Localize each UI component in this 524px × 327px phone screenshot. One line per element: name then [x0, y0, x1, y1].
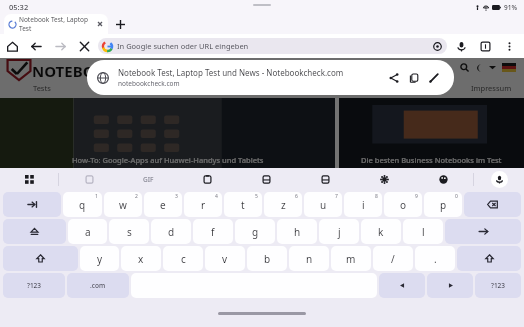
- button[interactable]: left: [379, 273, 425, 298]
- button[interactable]: o: [384, 192, 422, 217]
- button[interactable]: shift: [3, 246, 78, 271]
- staticText: y: [97, 252, 103, 266]
- staticText: t: [241, 198, 245, 212]
- staticText: d: [168, 225, 175, 239]
- button[interactable]: Text editing: [296, 168, 355, 191]
- button[interactable]: Voice search: [449, 34, 473, 58]
- staticText: r: [201, 198, 206, 212]
- button[interactable]: /: [373, 246, 413, 271]
- button[interactable]: Close tab: [97, 21, 103, 27]
- button[interactable]: enter: [445, 219, 521, 244]
- staticText: In Google suchen oder URL eingeben: [117, 41, 433, 51]
- staticText: ?123: [491, 281, 506, 290]
- button[interactable]: ?123: [475, 273, 521, 298]
- button[interactable]: Notebook Test, Laptop Test und News - No…: [87, 60, 454, 95]
- button[interactable]: c: [163, 246, 203, 271]
- button[interactable]: .: [415, 246, 455, 271]
- button[interactable]: l: [403, 219, 443, 244]
- button[interactable]: Edit: [424, 68, 444, 88]
- button[interactable]: Back: [24, 34, 48, 58]
- button[interactable]: Translate: [237, 168, 296, 191]
- button[interactable]: Tab switcher: [473, 34, 497, 58]
- button[interactable]: Lens: [433, 42, 442, 51]
- staticText: Notebook Test, Laptop Test: [19, 15, 95, 33]
- button[interactable]: m: [331, 246, 371, 271]
- button[interactable]: del: [464, 192, 521, 217]
- button[interactable]: w: [104, 192, 142, 217]
- staticText: notebookcheck.com: [118, 79, 180, 88]
- button[interactable]: In Google suchen oder URL eingeben: [98, 38, 447, 54]
- button[interactable]: Share: [384, 68, 404, 88]
- button[interactable]: f: [193, 219, 233, 244]
- button[interactable]: h: [277, 219, 317, 244]
- button[interactable]: n: [289, 246, 329, 271]
- button[interactable]: Copy: [404, 68, 424, 88]
- button[interactable]: Clipboard: [178, 168, 237, 191]
- button[interactable]: a: [68, 219, 107, 244]
- button[interactable]: Apps: [0, 168, 58, 191]
- staticText: i: [362, 198, 365, 212]
- staticText: c: [181, 252, 186, 266]
- button[interactable]: Voice input: [474, 168, 524, 191]
- button[interactable]: s: [109, 219, 149, 244]
- staticText: m: [346, 252, 356, 266]
- button[interactable]: Sticker: [59, 168, 119, 191]
- button[interactable]: d: [151, 219, 191, 244]
- staticText: q: [79, 198, 86, 212]
- button[interactable]: v: [205, 246, 245, 271]
- staticText: w: [119, 198, 127, 212]
- staticText: 5: [255, 193, 258, 200]
- button[interactable]: k: [361, 219, 401, 244]
- staticText: v: [222, 252, 228, 266]
- staticText: Die besten Business Notebooks im Test: [361, 155, 502, 165]
- staticText: a: [85, 225, 91, 239]
- button[interactable]: t: [224, 192, 262, 217]
- button[interactable]: b: [247, 246, 287, 271]
- staticText: .com: [90, 281, 106, 290]
- staticText: ?123: [27, 281, 42, 290]
- staticText: 1: [95, 193, 98, 200]
- button[interactable]: New tab: [112, 16, 128, 32]
- button[interactable]: x: [121, 246, 161, 271]
- button[interactable]: Theme: [414, 168, 473, 191]
- button[interactable]: Notebook Test, Laptop Test: [4, 14, 108, 34]
- button[interactable]: u: [304, 192, 342, 217]
- staticText: 4: [215, 193, 218, 200]
- button[interactable]: r: [184, 192, 222, 217]
- staticText: .: [434, 252, 437, 266]
- button[interactable]: shift: [457, 246, 521, 271]
- staticText: 2: [135, 193, 138, 200]
- button[interactable]: Forward: [48, 34, 72, 58]
- button[interactable]: Home: [0, 34, 24, 58]
- staticText: 8: [375, 193, 378, 200]
- staticText: 9: [415, 193, 418, 200]
- button[interactable]: ?123: [3, 273, 65, 298]
- staticText: l: [422, 225, 425, 239]
- button[interactable]: GIF: [119, 168, 178, 191]
- staticText: g: [252, 225, 259, 239]
- button[interactable]: caps: [3, 219, 66, 244]
- staticText: k: [378, 225, 384, 239]
- staticText: 0: [455, 193, 458, 200]
- staticText: p: [440, 198, 447, 212]
- button[interactable]: i: [344, 192, 382, 217]
- button[interactable]: p: [424, 192, 462, 217]
- button[interactable]: z: [264, 192, 302, 217]
- button[interactable]: tab: [3, 192, 61, 217]
- button[interactable]: y: [80, 246, 119, 271]
- button[interactable]: More options: [497, 34, 521, 58]
- staticText: NOTEBOOK: [32, 61, 117, 81]
- button[interactable]: .com: [67, 273, 129, 298]
- staticText: f: [211, 225, 215, 239]
- button[interactable]: Stop loading: [72, 34, 96, 58]
- button[interactable]: e: [144, 192, 182, 217]
- button[interactable]: q: [63, 192, 102, 217]
- button[interactable]: j: [319, 219, 359, 244]
- button[interactable]: right: [427, 273, 473, 298]
- button[interactable]: Settings: [355, 168, 414, 191]
- staticText: x: [138, 252, 144, 266]
- staticText: 05:32: [9, 2, 29, 12]
- staticText: n: [306, 252, 313, 266]
- button[interactable]: g: [235, 219, 275, 244]
